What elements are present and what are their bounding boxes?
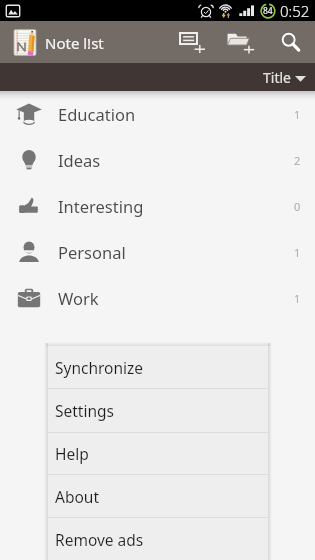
staticText: 1 — [294, 245, 301, 260]
button[interactable]: Ideas — [0, 137, 315, 183]
button[interactable]: Help — [48, 433, 268, 474]
staticText: 0 — [294, 199, 301, 214]
button[interactable]: Note l!st — [12, 29, 104, 56]
staticText: Education — [58, 103, 136, 125]
staticText: Personal — [58, 241, 126, 263]
staticText: Note l!st — [45, 33, 104, 53]
staticText: 2 — [294, 153, 301, 168]
button[interactable]: Settings — [48, 389, 268, 432]
staticText: Help — [55, 443, 89, 464]
staticText: 1 — [294, 291, 301, 306]
button[interactable]: New folder — [216, 21, 265, 63]
button[interactable]: Title — [263, 68, 315, 87]
staticText: Ideas — [58, 149, 101, 171]
staticText: About — [55, 486, 99, 507]
staticText: Remove ads — [55, 529, 144, 550]
staticText: Synchronize — [55, 357, 144, 378]
staticText: 84 — [263, 5, 273, 17]
button[interactable]: Search — [269, 21, 312, 63]
staticText: Settings — [55, 400, 114, 421]
staticText: Title — [263, 68, 291, 87]
button[interactable]: Personal — [0, 229, 315, 275]
button[interactable]: Remove ads — [48, 518, 268, 560]
button[interactable]: About — [48, 475, 268, 517]
staticText: 1 — [294, 107, 301, 122]
button[interactable]: Synchronize — [48, 346, 268, 388]
button[interactable]: Education — [0, 91, 315, 137]
button[interactable]: New note — [167, 21, 216, 63]
button[interactable]: Work — [0, 275, 315, 321]
staticText: Interesting — [58, 195, 144, 217]
button[interactable]: Interesting — [0, 183, 315, 229]
staticText: Work — [58, 287, 99, 309]
staticText: 0:52 — [280, 1, 310, 21]
